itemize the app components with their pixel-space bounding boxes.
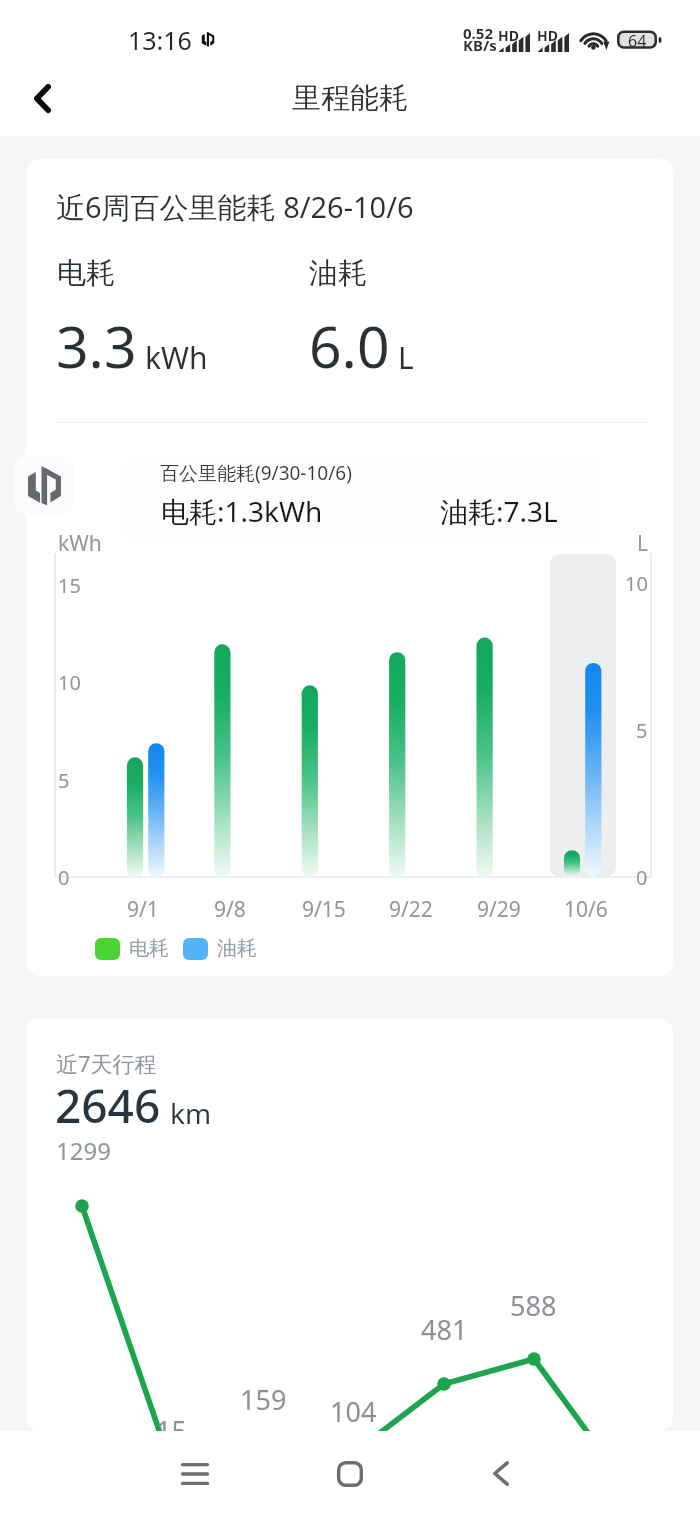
staticText: 13:16 (128, 23, 192, 57)
staticText: 6.0 (309, 307, 390, 385)
button[interactable]: Back (456, 1431, 546, 1516)
staticText: 481 (421, 1311, 468, 1348)
staticText: 0.52 (463, 23, 493, 43)
staticText: HD (498, 26, 519, 45)
staticText: 64 (628, 30, 647, 49)
staticText: 3.3 (56, 307, 137, 385)
staticText: HD (537, 26, 558, 45)
staticText: 近6周百公里能耗 8/26-10/6 (56, 187, 414, 227)
staticText: KB/s (463, 35, 497, 55)
staticText: 588 (510, 1287, 557, 1324)
staticText: L (398, 337, 414, 378)
staticText: 2646 (55, 1074, 161, 1137)
staticText: 15 (156, 1412, 187, 1431)
staticText: kWh (145, 337, 208, 378)
staticText: 15 (58, 572, 81, 599)
staticText: 9/1 (127, 895, 159, 924)
staticText: 1299 (56, 1134, 111, 1167)
staticText: 9/15 (302, 895, 346, 924)
staticText: 油耗 (309, 255, 367, 292)
staticText: 百公里能耗(9/30-10/6) (160, 460, 352, 486)
staticText: 5 (636, 717, 648, 744)
staticText: 9/8 (214, 895, 246, 924)
staticText: 电耗:1.3kWh (161, 492, 323, 530)
staticText: km (170, 1094, 212, 1132)
staticText: 电耗 (57, 255, 115, 292)
staticText: 159 (240, 1381, 287, 1418)
staticText: 5 (58, 767, 70, 794)
button[interactable]: Home (305, 1431, 395, 1516)
staticText: 近7天行程 (56, 1048, 157, 1078)
staticText: 10 (625, 570, 648, 597)
staticText: kWh (58, 529, 102, 558)
staticText: L (637, 529, 649, 558)
button[interactable]: Recent apps (150, 1431, 240, 1516)
staticText: 9/29 (477, 895, 521, 924)
staticText: 油耗 (217, 936, 257, 961)
staticText: 0 (58, 864, 70, 891)
staticText: 电耗 (129, 936, 169, 961)
staticText: 10 (58, 669, 81, 696)
staticText: 油耗:7.3L (440, 492, 558, 530)
staticText: 里程能耗 (292, 80, 408, 117)
staticText: 9/22 (389, 895, 433, 924)
button[interactable]: Back (8, 64, 76, 132)
button[interactable]: Brand logo (14, 455, 74, 515)
staticText: 104 (330, 1393, 377, 1430)
staticText: 0 (636, 864, 648, 891)
staticText: 10/6 (564, 895, 608, 924)
